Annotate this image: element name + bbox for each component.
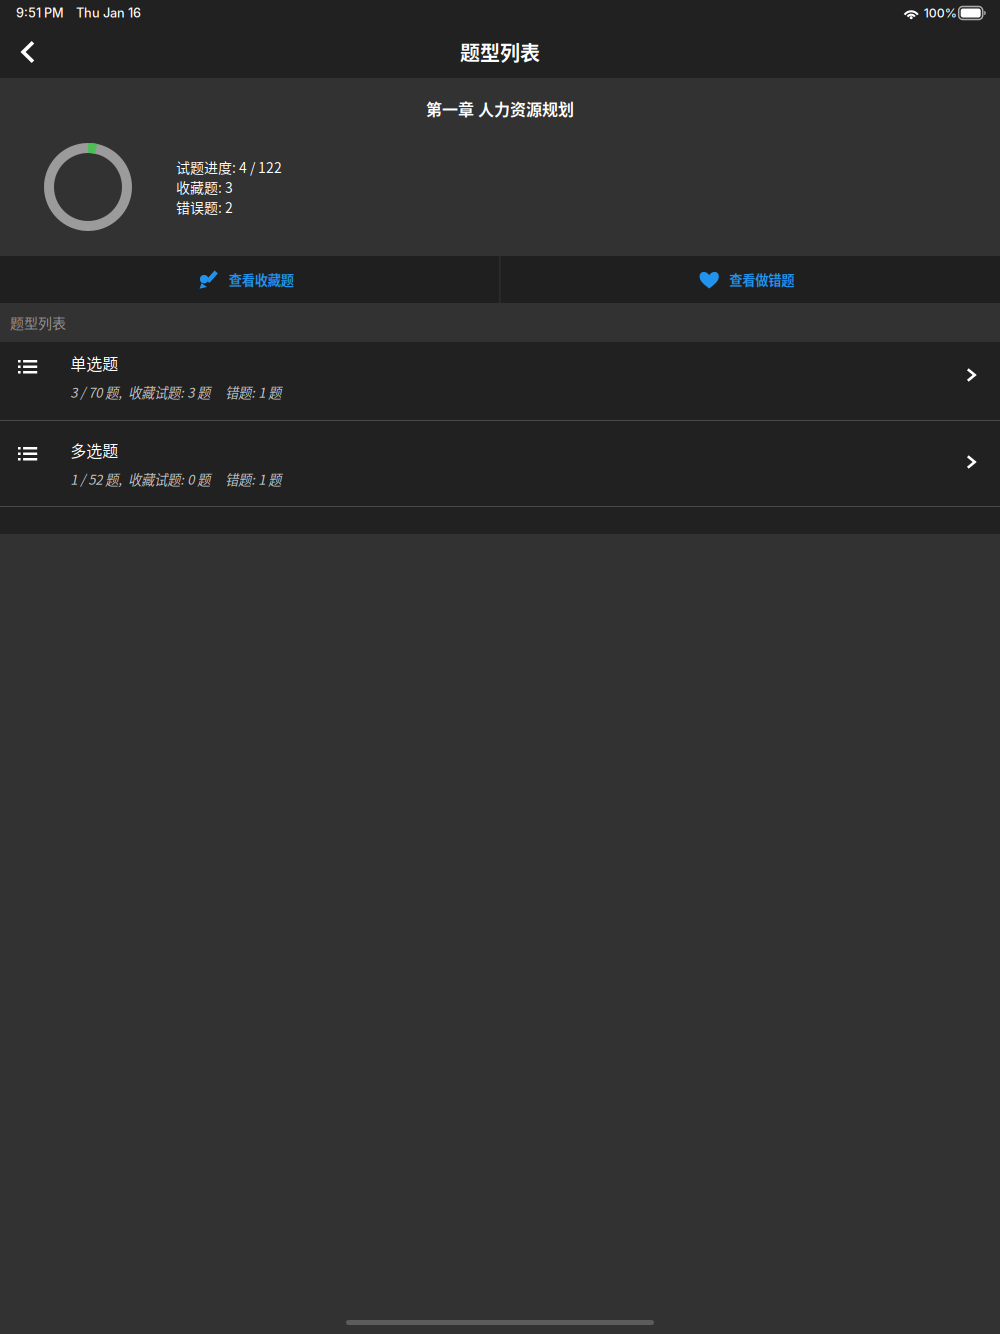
- button[interactable]: 查看做错题: [500, 256, 1000, 303]
- button[interactable]: 多选题: [0, 421, 1000, 506]
- staticText: 试题进度: 4 / 122: [176, 157, 282, 177]
- button[interactable]: 单选题: [0, 342, 1000, 420]
- staticText: 9:51 PM: [16, 5, 64, 21]
- staticText: 查看做错题: [729, 270, 794, 289]
- staticText: 查看收藏题: [229, 270, 294, 289]
- staticText: 单选题: [70, 351, 118, 375]
- staticText: 第一章 人力资源规划: [426, 97, 574, 120]
- staticText: 收藏题: 3: [176, 177, 233, 197]
- staticText: Thu Jan 16: [76, 5, 141, 21]
- staticText: 3 / 70 题, 收藏试题: 3 题 错题: 1 题: [70, 382, 281, 402]
- staticText: 题型列表: [10, 312, 66, 333]
- staticText: 1 / 52 题, 收藏试题: 0 题 错题: 1 题: [70, 469, 281, 489]
- button[interactable]: 查看收藏题: [0, 256, 499, 303]
- button[interactable]: Back: [0, 26, 56, 78]
- staticText: 多选题: [70, 438, 118, 462]
- staticText: 错误题: 2: [176, 197, 233, 217]
- staticText: 100%: [924, 6, 957, 20]
- staticText: 题型列表: [460, 37, 540, 66]
